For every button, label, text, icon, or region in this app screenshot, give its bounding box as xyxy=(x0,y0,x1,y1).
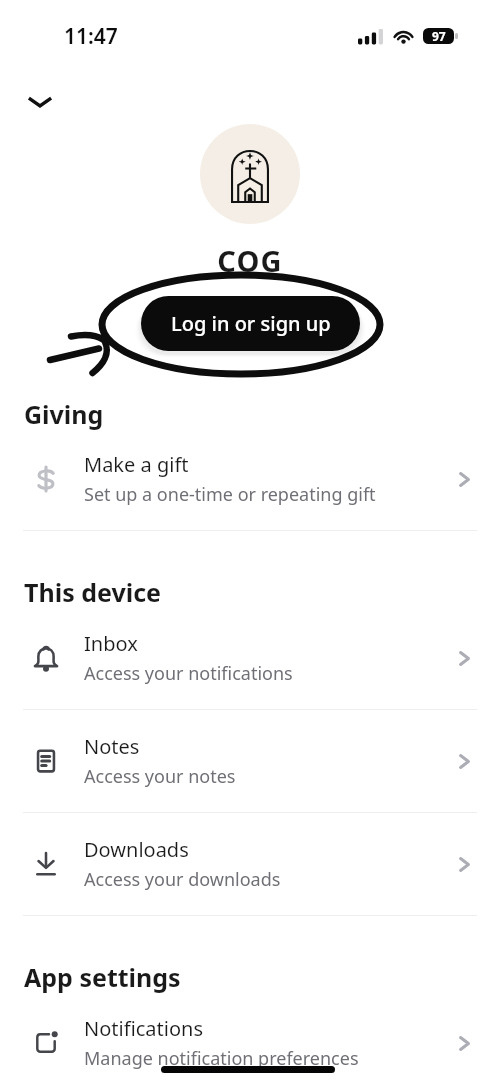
staticText: Log in or sign up xyxy=(171,310,331,337)
staticText: Make a gift xyxy=(84,451,189,478)
staticText: Manage notification preferences xyxy=(84,1046,359,1071)
staticText: Giving xyxy=(24,397,104,431)
staticText: This device xyxy=(24,575,162,609)
staticText: Inbox xyxy=(84,630,138,657)
button[interactable]: Notes xyxy=(0,710,500,812)
staticText: Notifications xyxy=(84,1015,203,1042)
staticText: App settings xyxy=(24,960,181,994)
button[interactable]: Log in or sign up xyxy=(141,296,360,351)
staticText: Downloads xyxy=(84,836,189,863)
staticText: Access your notifications xyxy=(84,661,293,686)
staticText: 11:47 xyxy=(64,22,118,51)
button[interactable]: Inbox xyxy=(0,607,500,709)
staticText: Set up a one-time or repeating gift xyxy=(84,482,376,507)
staticText: Access your notes xyxy=(84,764,236,789)
staticText: Notes xyxy=(84,733,140,760)
button[interactable]: Notifications xyxy=(0,992,500,1083)
button[interactable]: Downloads xyxy=(0,813,500,915)
staticText: COG xyxy=(217,241,283,280)
staticText: Access your downloads xyxy=(84,867,281,892)
button[interactable]: Collapse xyxy=(14,76,66,128)
staticText: 97 xyxy=(432,28,446,44)
button[interactable]: Make a gift xyxy=(0,428,500,530)
